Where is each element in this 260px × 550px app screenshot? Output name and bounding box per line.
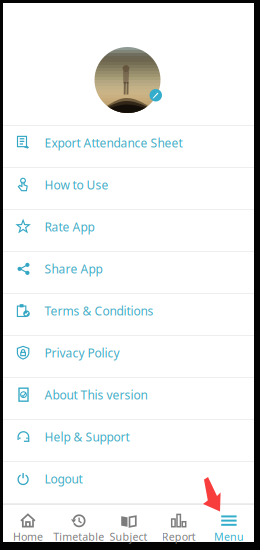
button[interactable]: Rate App bbox=[3, 210, 254, 252]
button[interactable]: Share App bbox=[3, 252, 254, 294]
button[interactable]: Timetable bbox=[53, 505, 103, 542]
staticText: Rate App bbox=[45, 219, 95, 235]
staticText: How to Use bbox=[45, 177, 109, 193]
button[interactable]: Terms & Conditions bbox=[3, 294, 254, 336]
button[interactable]: Subject bbox=[103, 505, 154, 542]
staticText: Home bbox=[13, 529, 43, 544]
staticText: Share App bbox=[45, 261, 103, 277]
button[interactable]: Home bbox=[3, 505, 53, 542]
staticText: Timetable bbox=[53, 529, 104, 544]
staticText: Report bbox=[162, 529, 196, 544]
button[interactable]: Report bbox=[154, 505, 204, 542]
button[interactable]: Help & Support bbox=[3, 420, 254, 462]
button[interactable]: About This version bbox=[3, 378, 254, 420]
button[interactable]: How to Use bbox=[3, 168, 254, 210]
staticText: Help & Support bbox=[45, 429, 130, 445]
button[interactable]: Privacy Policy bbox=[3, 336, 254, 378]
staticText: Privacy Policy bbox=[45, 345, 120, 361]
staticText: Menu bbox=[214, 529, 244, 544]
button[interactable]: Menu bbox=[204, 505, 254, 542]
button[interactable]: Logout bbox=[3, 462, 254, 504]
staticText: About This version bbox=[45, 387, 148, 403]
staticText: Logout bbox=[45, 471, 83, 487]
button[interactable]: Export Attendance Sheet bbox=[3, 126, 254, 168]
staticText: Terms & Conditions bbox=[45, 303, 154, 319]
staticText: Export Attendance Sheet bbox=[45, 135, 183, 151]
staticText: Subject bbox=[109, 529, 147, 544]
